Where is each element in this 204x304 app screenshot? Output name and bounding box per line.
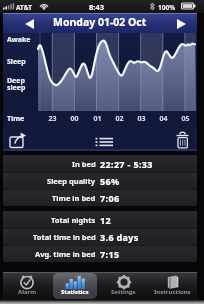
staticText: 04 — [159, 114, 168, 124]
staticText: 22:27 - 5:33 — [100, 158, 153, 170]
staticText: Avg. time in bed — [35, 249, 96, 259]
staticText: AT&T — [16, 3, 32, 12]
staticText: 100% — [158, 3, 176, 12]
staticText: 02 — [115, 114, 124, 124]
staticText: 05 — [181, 114, 190, 124]
button[interactable]: Alarm — [3, 272, 51, 300]
staticText: Statistics — [61, 288, 89, 296]
staticText: Time — [7, 114, 25, 124]
staticText: 8:43 — [89, 2, 104, 12]
staticText: In bed — [72, 159, 96, 169]
staticText: 00 — [70, 114, 79, 124]
button[interactable] — [93, 131, 117, 150]
staticText: Deep — [7, 76, 25, 86]
staticText: Time in bed — [52, 193, 96, 203]
staticText: sleep — [7, 83, 26, 93]
staticText: Total nights — [51, 215, 96, 225]
button[interactable] — [7, 131, 29, 150]
staticText: Sleep quality — [47, 176, 96, 186]
button[interactable]: Instructions — [148, 272, 197, 300]
staticText: 7:15 — [100, 248, 120, 260]
staticText: Sleep — [7, 57, 26, 67]
staticText: Awake — [7, 35, 31, 45]
staticText: 03 — [137, 114, 146, 124]
staticText: 56% — [100, 175, 120, 187]
staticText: Total time in bed — [33, 232, 96, 242]
staticText: Settings — [111, 288, 136, 296]
button[interactable] — [17, 15, 41, 32]
button[interactable]: Settings — [99, 272, 148, 300]
staticText: Alarm — [18, 288, 37, 296]
button[interactable] — [169, 15, 193, 32]
staticText: Monday 01-02 Oct — [53, 15, 147, 29]
button[interactable] — [174, 131, 193, 150]
staticText: Instructions — [154, 288, 191, 296]
staticText: 23 — [48, 114, 57, 124]
staticText: 3.6 days — [100, 231, 139, 243]
button[interactable]: Statistics — [51, 272, 99, 300]
staticText: 01 — [93, 114, 102, 124]
staticText: 12 — [100, 214, 111, 226]
staticText: 7:06 — [100, 192, 120, 204]
